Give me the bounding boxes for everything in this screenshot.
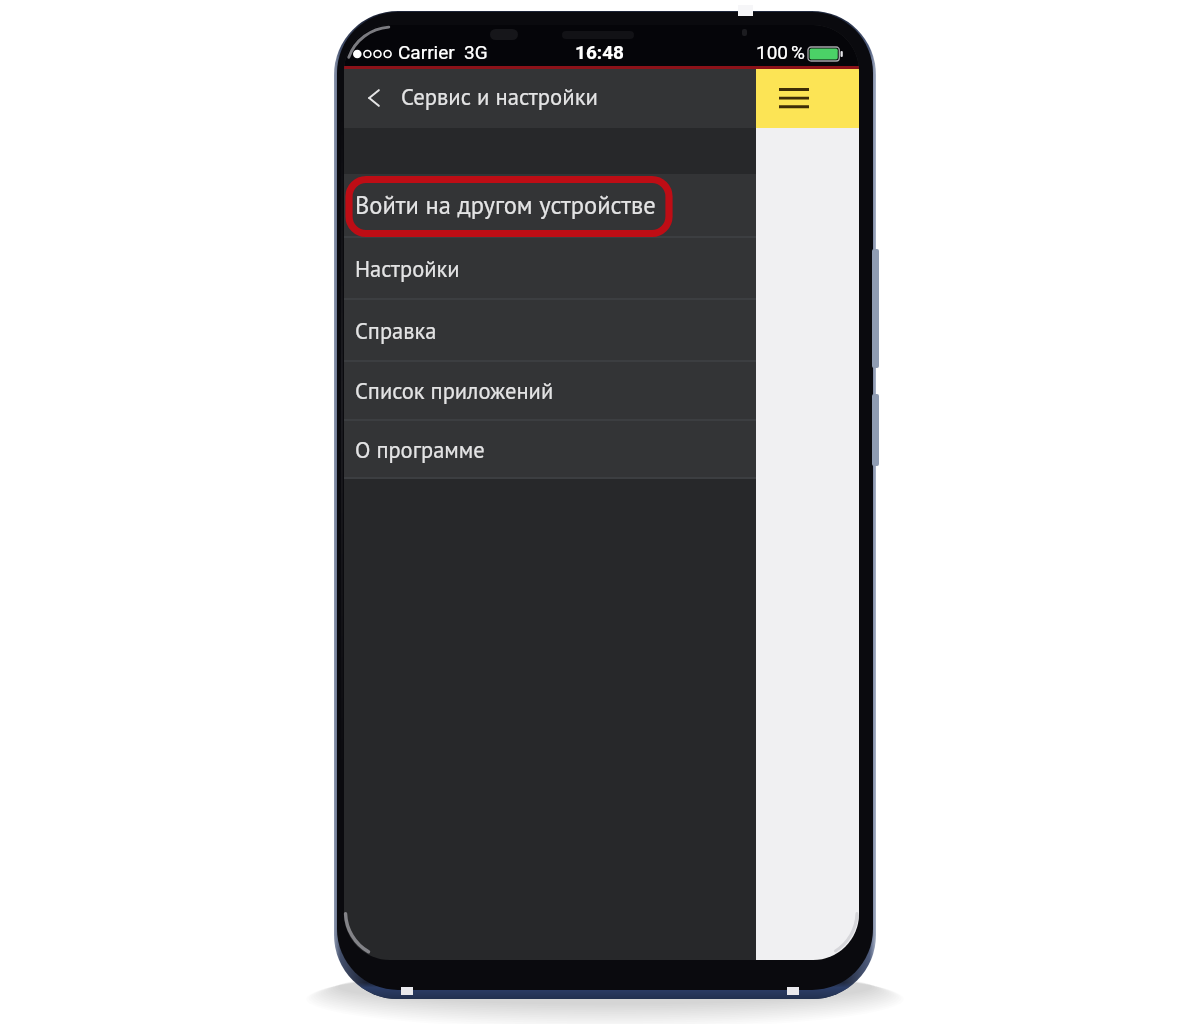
staticText: 3G <box>464 41 488 63</box>
staticText: Carrier <box>398 41 455 63</box>
button[interactable]: Войти на другом устройстве <box>344 174 756 238</box>
button[interactable]: Настройки <box>344 238 756 300</box>
button[interactable]: Справка <box>344 300 756 362</box>
staticText: 100 <box>756 41 789 63</box>
staticText: % <box>791 41 805 63</box>
button[interactable]: О программе <box>344 421 756 479</box>
button[interactable]: Open menu <box>756 69 859 128</box>
staticText: Войти на другом устройстве <box>355 189 656 221</box>
staticText: Сервис и настройки <box>401 82 598 111</box>
staticText: Список приложений <box>355 376 554 405</box>
staticText: О программе <box>355 435 485 464</box>
staticText: Настройки <box>355 254 460 283</box>
staticText: 16:48 <box>575 41 624 63</box>
button[interactable]: Back <box>344 69 401 128</box>
staticText: Справка <box>355 316 437 345</box>
button[interactable]: Список приложений <box>344 362 756 421</box>
